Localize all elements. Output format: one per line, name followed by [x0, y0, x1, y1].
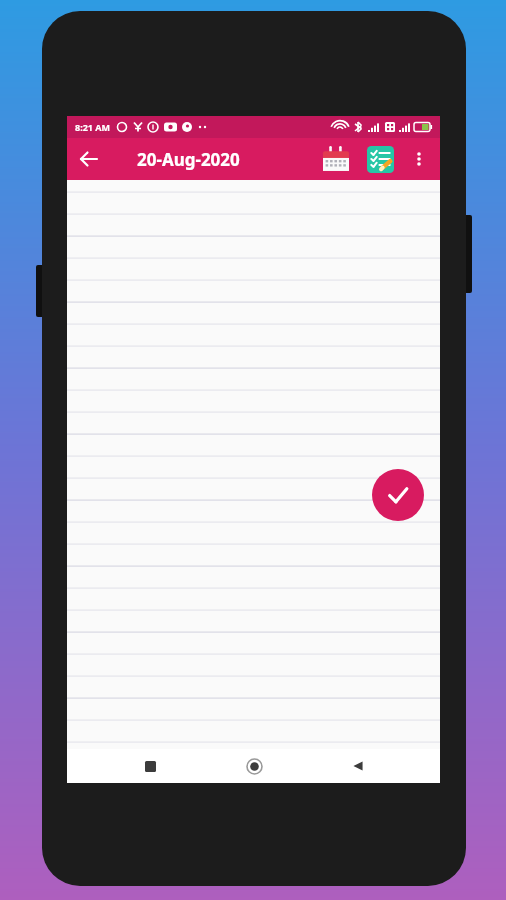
button[interactable]: Home — [232, 749, 276, 783]
staticText: 20-Aug-2020 — [137, 148, 240, 171]
button[interactable]: Save — [372, 469, 424, 521]
button[interactable]: Calendar — [314, 138, 358, 180]
button[interactable]: Back — [336, 749, 380, 783]
button[interactable]: Checklist — [358, 138, 402, 180]
button[interactable]: More options — [402, 142, 436, 176]
staticText: 8:21 AM — [75, 121, 111, 133]
button[interactable]: Recents — [128, 749, 172, 783]
button[interactable]: Back — [67, 138, 111, 180]
